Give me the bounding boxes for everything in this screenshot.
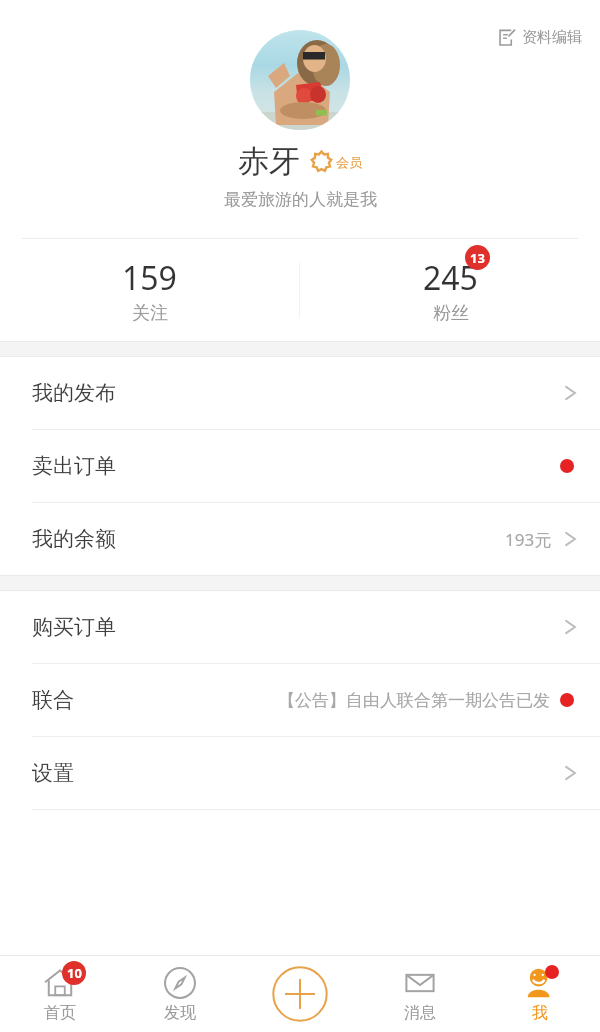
staticText: 【公告】自由人联合第一期公告已发 — [278, 690, 550, 711]
staticText: 159 — [122, 256, 177, 300]
staticText: 设置 — [32, 760, 74, 786]
button[interactable]: 245 — [300, 239, 600, 341]
button[interactable]: Avatar — [250, 30, 350, 130]
staticText: 赤牙 — [238, 142, 300, 181]
staticText: 卖出订单 — [32, 453, 116, 479]
staticText: 关注 — [132, 302, 168, 325]
button[interactable]: 资料编辑 — [494, 24, 586, 51]
button[interactable]: 159 — [0, 239, 299, 341]
staticText: 最爱旅游的人就是我 — [224, 189, 377, 210]
button[interactable]: 卖出订单 — [0, 430, 600, 502]
staticText: 资料编辑 — [522, 28, 582, 47]
staticText: 245 — [423, 256, 478, 300]
button[interactable]: 设置 — [0, 737, 600, 809]
staticText: 购买订单 — [32, 614, 116, 640]
staticText: 消息 — [404, 1003, 436, 1023]
button[interactable]: 购买订单 — [0, 591, 600, 663]
staticText: 我的发布 — [32, 380, 116, 406]
staticText: 联合 — [32, 687, 74, 713]
staticText: 我的余额 — [32, 526, 116, 552]
staticText: 10 — [67, 964, 82, 982]
button[interactable]: 我的发布 — [0, 357, 600, 429]
button[interactable]: 10 — [0, 956, 120, 1032]
staticText: 粉丝 — [433, 302, 469, 325]
staticText: 首页 — [44, 1003, 76, 1023]
staticText: 我 — [532, 1003, 548, 1023]
staticText: 193元 — [505, 528, 552, 551]
button[interactable]: 会员 — [311, 151, 362, 172]
button[interactable]: 消息 — [360, 956, 480, 1032]
staticText: 13 — [470, 249, 485, 267]
button[interactable]: 我 — [480, 956, 600, 1032]
staticText: 发现 — [164, 1003, 196, 1023]
button[interactable]: 联合 — [0, 664, 600, 736]
button[interactable]: 我的余额 — [0, 503, 600, 575]
staticText: 会员 — [336, 154, 362, 170]
button[interactable]: Add — [240, 956, 360, 1032]
button[interactable]: 发现 — [120, 956, 240, 1032]
